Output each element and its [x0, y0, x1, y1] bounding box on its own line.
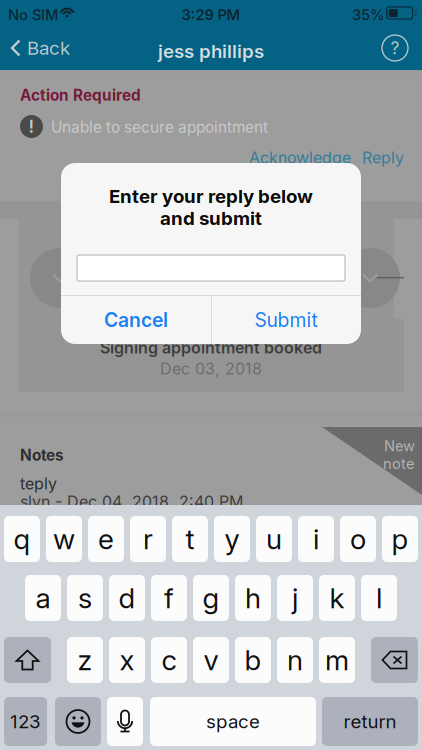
button[interactable]: Next appointment [340, 248, 400, 308]
staticText: x [119, 643, 134, 677]
staticText: Submit [254, 308, 317, 332]
button[interactable]: 123 [4, 697, 47, 746]
button[interactable]: Previous appointment [30, 248, 90, 308]
staticText: y [224, 522, 239, 556]
staticText: ! [28, 116, 34, 137]
staticText: slyn - Dec 04, 2018, 2:40 PM [20, 492, 243, 511]
staticText: return [343, 710, 396, 733]
staticText: space [206, 710, 260, 733]
button[interactable]: g [193, 575, 229, 621]
staticText: n [287, 643, 303, 677]
button[interactable]: Dictate [107, 697, 143, 746]
button[interactable]: h [235, 575, 271, 621]
staticText: teply [20, 474, 57, 493]
button[interactable]: n [277, 637, 313, 683]
button[interactable]: m [319, 637, 355, 683]
staticText: o [350, 522, 366, 556]
button[interactable]: Reply [362, 144, 404, 171]
staticText: e [98, 522, 114, 556]
button[interactable]: Back [0, 26, 84, 70]
staticText: a [35, 581, 50, 615]
button[interactable]: q [4, 516, 40, 562]
staticText: Notes [20, 446, 64, 465]
staticText: New [384, 437, 415, 455]
button[interactable]: l [361, 575, 397, 621]
button[interactable]: j [277, 575, 313, 621]
staticText: s [78, 581, 92, 615]
button[interactable]: Delete [371, 637, 418, 683]
button[interactable]: e [88, 516, 124, 562]
staticText: Reply [362, 148, 404, 167]
button[interactable]: w [46, 516, 82, 562]
button[interactable]: p [382, 516, 418, 562]
button[interactable]: return [322, 697, 418, 746]
button[interactable]: d [109, 575, 145, 621]
staticText: w [53, 522, 75, 556]
staticText: c [161, 643, 176, 677]
staticText: Dec 03, 2018 [160, 359, 262, 378]
staticText: d [118, 581, 135, 615]
staticText: and submit [160, 207, 262, 230]
staticText: q [13, 522, 30, 556]
button[interactable]: New note [322, 427, 422, 495]
staticText: h [245, 581, 261, 615]
staticText: ? [390, 37, 399, 58]
staticText: 3:29 PM [181, 6, 240, 24]
button[interactable]: Emoji [55, 697, 101, 746]
staticText: j [292, 581, 298, 615]
staticText: t [185, 522, 194, 556]
button[interactable]: Cancel [61, 296, 211, 344]
button[interactable]: u [256, 516, 292, 562]
button[interactable]: s [67, 575, 103, 621]
button[interactable]: z [67, 637, 103, 683]
button[interactable]: b [235, 637, 271, 683]
button[interactable]: t [172, 516, 208, 562]
button[interactable]: Submit [211, 296, 361, 344]
button[interactable]: c [151, 637, 187, 683]
staticText: 123 [10, 710, 41, 733]
button[interactable]: r [130, 516, 166, 562]
staticText: No SIM [8, 6, 58, 24]
staticText: Signing appointment booked [100, 338, 322, 357]
staticText: Enter your reply below [109, 185, 313, 208]
staticText: v [203, 643, 218, 677]
button[interactable]: k [319, 575, 355, 621]
staticText: Action Required [20, 86, 141, 105]
staticText: r [143, 522, 153, 556]
staticText: 35% [352, 6, 385, 24]
staticText: k [329, 581, 344, 615]
button[interactable]: Shift [4, 637, 51, 683]
button[interactable]: v [193, 637, 229, 683]
staticText: i [313, 522, 319, 556]
staticText: l [376, 581, 382, 615]
staticText: p [391, 522, 408, 556]
staticText: u [266, 522, 282, 556]
staticText: z [77, 643, 92, 677]
button[interactable]: f [151, 575, 187, 621]
staticText: m [325, 643, 349, 677]
button[interactable]: a [25, 575, 61, 621]
staticText: b [244, 643, 261, 677]
staticText: note [383, 455, 415, 472]
staticText: g [202, 581, 219, 615]
button[interactable]: space [150, 697, 316, 746]
staticText: Acknowledge [249, 148, 351, 167]
button[interactable]: x [109, 637, 145, 683]
staticText: Unable to secure appointment [51, 118, 268, 137]
staticText: Back [27, 37, 70, 59]
staticText: Cancel [104, 308, 168, 332]
button[interactable]: Help [368, 26, 422, 70]
staticText: jess phillips [158, 40, 264, 63]
staticText: f [164, 581, 174, 615]
button[interactable]: i [298, 516, 334, 562]
button[interactable]: y [214, 516, 250, 562]
button[interactable]: Acknowledge [249, 144, 351, 171]
button[interactable]: o [340, 516, 376, 562]
